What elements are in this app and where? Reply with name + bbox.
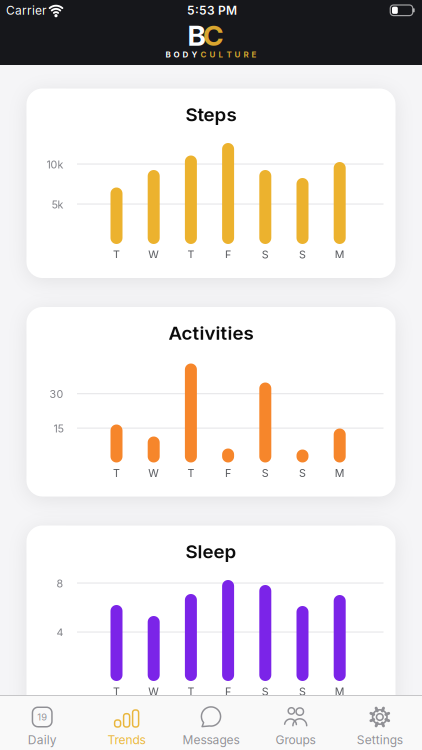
staticText: T (187, 248, 194, 261)
staticText: Daily (28, 733, 57, 747)
staticText: Activities (168, 322, 253, 344)
staticText: 15 (53, 422, 63, 435)
staticText: W (148, 685, 159, 698)
staticText: 5:53 PM (187, 3, 237, 18)
staticText: T (187, 467, 194, 479)
staticText: B O D Y (165, 50, 200, 59)
staticText: S (299, 685, 306, 698)
staticText: 5k (51, 198, 63, 211)
button[interactable]: Groups (253, 695, 338, 750)
staticText: 30 (49, 388, 63, 400)
staticText: Sleep (185, 540, 236, 562)
button[interactable]: Messages (169, 695, 253, 750)
staticText: F (225, 248, 231, 261)
staticText: S (299, 248, 306, 261)
staticText: 10k (46, 158, 63, 171)
staticText: F (225, 685, 231, 698)
staticText: 4 (56, 626, 63, 639)
staticText: T (113, 248, 120, 261)
staticText: W (148, 248, 159, 261)
staticText: T (113, 467, 120, 479)
staticText: Steps (185, 103, 236, 125)
staticText: T (113, 685, 120, 698)
staticText: M (335, 685, 345, 698)
staticText: C (203, 19, 224, 52)
button[interactable]: 19 (0, 695, 84, 750)
staticText: S (262, 467, 269, 479)
staticText: F (225, 467, 231, 479)
staticText: W (148, 467, 159, 479)
staticText: T (187, 685, 194, 698)
staticText: Carrier (6, 3, 47, 18)
staticText: Settings (357, 733, 403, 747)
staticText: C U L T U R E (200, 50, 256, 59)
staticText: M (335, 467, 345, 479)
button[interactable]: Settings (338, 695, 422, 750)
button[interactable]: Trends (84, 695, 169, 750)
staticText: Groups (275, 733, 315, 747)
staticText: 19 (37, 711, 47, 722)
staticText: M (335, 248, 345, 261)
staticText: S (299, 467, 306, 479)
staticText: B (187, 19, 205, 52)
staticText: S (262, 685, 269, 698)
staticText: Trends (108, 733, 146, 747)
staticText: S (262, 248, 269, 261)
staticText: 8 (56, 577, 63, 590)
staticText: Messages (182, 733, 239, 747)
